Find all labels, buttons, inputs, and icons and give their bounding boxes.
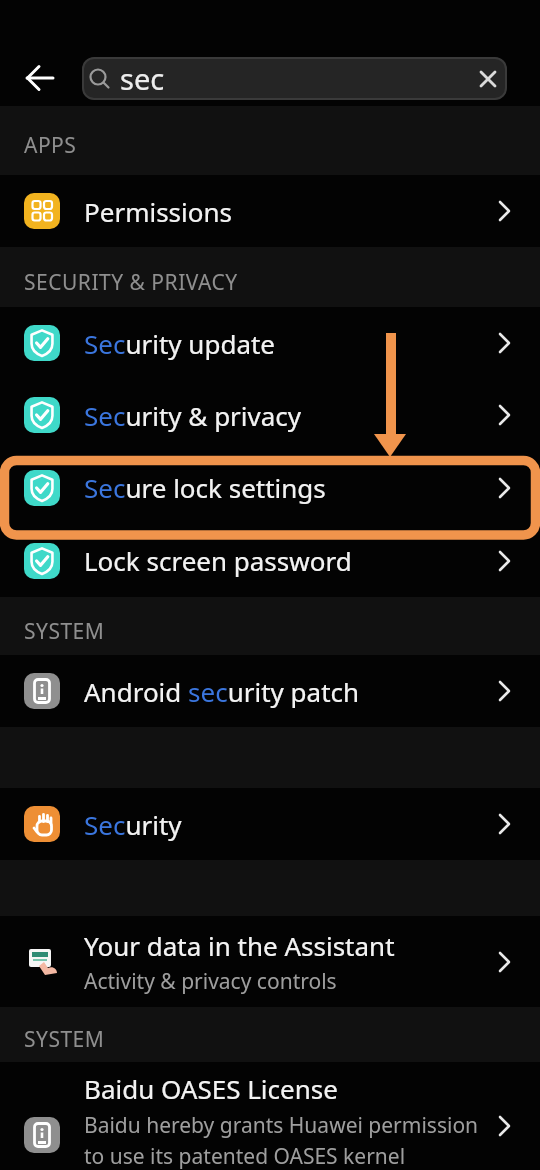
staticText: sec — [120, 59, 165, 98]
button[interactable]: Your data in the Assistant — [0, 916, 540, 1007]
staticText: Permissions — [84, 194, 233, 229]
button[interactable]: Lock screen password — [0, 524, 540, 597]
button[interactable]: Android security patch — [0, 655, 540, 727]
staticText: Baidu OASES License — [84, 1071, 338, 1106]
staticText: Android security patch — [84, 674, 360, 709]
staticText: SECURITY & PRIVACY — [24, 268, 238, 297]
button[interactable]: Permissions — [0, 175, 540, 247]
button[interactable]: Security update — [0, 307, 540, 379]
staticText: Security — [84, 807, 182, 842]
staticText: Security update — [84, 326, 276, 361]
button[interactable]: Security — [0, 788, 540, 860]
button[interactable]: Baidu OASES License — [0, 1062, 540, 1170]
staticText: APPS — [24, 131, 77, 160]
button[interactable]: Security & privacy — [0, 379, 540, 451]
staticText: Lock screen password — [84, 543, 352, 578]
staticText: Security & privacy — [84, 398, 302, 433]
staticText: Baidu hereby grants Huawei permission to… — [84, 1111, 479, 1170]
staticText: SYSTEM — [24, 1025, 105, 1054]
button[interactable] — [26, 64, 54, 92]
button[interactable]: Secure lock settings — [0, 451, 540, 524]
staticText: SYSTEM — [24, 617, 105, 646]
staticText: Your data in the Assistant — [84, 928, 395, 963]
button[interactable]: sec — [82, 57, 507, 100]
staticText: Activity & privacy controls — [84, 967, 337, 996]
staticText: Secure lock settings — [84, 470, 326, 505]
button[interactable] — [478, 69, 498, 89]
